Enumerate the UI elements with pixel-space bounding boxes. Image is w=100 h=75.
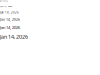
staticText: Jan 14, 2026	[0, 10, 19, 14]
staticText: Jan 14, 2026	[0, 17, 20, 22]
staticText: Jan 14, 2026	[0, 0, 8, 2]
staticText: Jan 14, 2026	[0, 5, 12, 7]
staticText: Jan 14, 2026	[0, 33, 28, 40]
staticText: Jan 14, 2026	[0, 25, 20, 30]
